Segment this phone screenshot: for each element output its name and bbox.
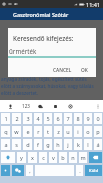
button[interactable]: 6 [54, 113, 62, 124]
button[interactable]: u [64, 126, 72, 137]
button[interactable]: CANCEL [51, 64, 74, 77]
button[interactable]: n [69, 152, 77, 163]
button[interactable]: 8 [74, 113, 82, 124]
staticText: s [15, 141, 18, 148]
staticText: , [29, 167, 31, 174]
button[interactable]: 123 [18, 100, 33, 112]
button[interactable]: Backspace [89, 152, 102, 163]
button[interactable]: Shift [1, 152, 15, 163]
staticText: r [37, 128, 40, 135]
staticText: OK [81, 67, 88, 74]
button[interactable]: z [54, 126, 62, 137]
staticText: z [57, 128, 60, 135]
button[interactable]: Clipboard [48, 100, 63, 112]
button[interactable]: v [49, 152, 57, 163]
staticText: 2 [15, 115, 19, 122]
staticText: h [56, 141, 60, 148]
staticText: m [80, 154, 86, 161]
staticText: o [86, 128, 90, 135]
staticText: g [46, 141, 50, 148]
staticText: 123 [22, 103, 30, 109]
button[interactable]: r [34, 126, 42, 137]
button[interactable]: b [59, 152, 67, 163]
button[interactable]: s [12, 139, 21, 150]
button[interactable]: a [1, 139, 10, 150]
staticText: 6 [56, 115, 60, 122]
button[interactable]: OK [79, 64, 90, 77]
staticText: 4 [36, 115, 40, 122]
button[interactable]: Voice input [3, 100, 18, 112]
button[interactable]: 0 [94, 113, 102, 124]
button[interactable]: k [74, 139, 82, 150]
button[interactable]: 3 [23, 113, 32, 124]
staticText: Keresendő kifejezés: [13, 34, 74, 42]
button[interactable]: Emoji [12, 165, 24, 176]
button[interactable]: 4 [34, 113, 42, 124]
staticText: 8 [76, 115, 80, 122]
staticText: űrmérték [9, 47, 37, 55]
staticText: k [77, 141, 80, 148]
staticText: anyaga zsiradék, tojás, egészített sütés [1, 76, 87, 82]
staticText: elött a deszertet. [1, 90, 39, 96]
button[interactable]: j [64, 139, 72, 150]
staticText: f [37, 141, 39, 148]
staticText: i [77, 128, 79, 135]
staticText: p [96, 128, 100, 135]
staticText: 7 [66, 115, 70, 122]
staticText: Küld [89, 168, 98, 174]
button[interactable]: 7 [64, 113, 72, 124]
button[interactable]: Stickers [33, 100, 48, 112]
button[interactable]: c [39, 152, 47, 163]
button[interactable]: g [44, 139, 52, 150]
staticText: . [79, 167, 81, 174]
button[interactable]: o [84, 126, 92, 137]
button[interactable]: 9 [84, 113, 92, 124]
button[interactable]: 5 [44, 113, 52, 124]
button[interactable]: , [26, 165, 33, 176]
staticText: 11:41 [86, 1, 101, 8]
button[interactable]: d [23, 139, 32, 150]
staticText: c [42, 154, 45, 161]
button[interactable]: y [17, 152, 26, 163]
button[interactable]: Gasztronómiai Szótár [0, 8, 103, 20]
staticText: y [20, 154, 23, 161]
staticText: e [26, 128, 30, 135]
button[interactable]: l [84, 139, 92, 150]
button[interactable]: Küld [85, 165, 102, 176]
staticText: x [31, 154, 34, 161]
staticText: a [4, 141, 8, 148]
staticText: á [96, 141, 100, 148]
staticText: l [87, 141, 89, 148]
button[interactable]: m [79, 152, 87, 163]
button[interactable]: Settings [63, 100, 78, 112]
staticText: b [61, 154, 65, 161]
staticText: w [14, 128, 19, 135]
button[interactable]: p [94, 126, 102, 137]
button[interactable]: f [34, 139, 42, 150]
button[interactable]: Symbols [1, 165, 10, 176]
button[interactable]: i [74, 126, 82, 137]
staticText: q [4, 128, 8, 135]
staticText: u [66, 128, 70, 135]
staticText: 5 [46, 115, 50, 122]
button[interactable]: 1 [1, 113, 10, 124]
button[interactable]: e [23, 126, 32, 137]
button[interactable]: t [44, 126, 52, 137]
button[interactable]: h [54, 139, 62, 150]
button[interactable]: More options [93, 100, 103, 112]
staticText: 1 [4, 115, 8, 122]
button[interactable]: á [94, 139, 102, 150]
button[interactable]: x [28, 152, 37, 163]
staticText: j [67, 141, 69, 148]
staticText: 9 [86, 115, 90, 122]
staticText: 3 [26, 115, 30, 122]
staticText: t [47, 128, 49, 135]
button[interactable]: 2 [12, 113, 21, 124]
button[interactable]: w [12, 126, 21, 137]
button[interactable]: . [76, 165, 83, 176]
button[interactable]: q [1, 126, 10, 137]
staticText: CANCEL [53, 67, 72, 74]
staticText: n [71, 154, 75, 161]
staticText: v [52, 154, 55, 161]
